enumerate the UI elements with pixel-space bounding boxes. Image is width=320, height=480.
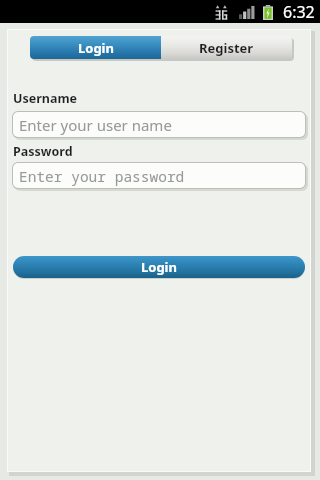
other: 3G mobile data	[215, 5, 228, 20]
staticText: Register	[199, 39, 254, 57]
staticText: Enter your password	[19, 166, 185, 186]
button[interactable]: Login	[30, 36, 161, 59]
staticText: Enter your user name	[19, 115, 172, 135]
button[interactable]: Enter your user name	[13, 112, 305, 137]
staticText: Username	[13, 90, 78, 107]
button[interactable]: Login	[13, 256, 305, 278]
staticText: Login	[78, 39, 114, 57]
button[interactable]: Register	[161, 36, 292, 59]
staticText: Login	[141, 258, 177, 276]
staticText: Password	[13, 143, 73, 160]
other: Battery charging	[263, 5, 273, 20]
button[interactable]: Enter your password	[13, 163, 305, 188]
staticText: 6:32	[283, 1, 315, 23]
other: Signal strength	[239, 6, 255, 19]
